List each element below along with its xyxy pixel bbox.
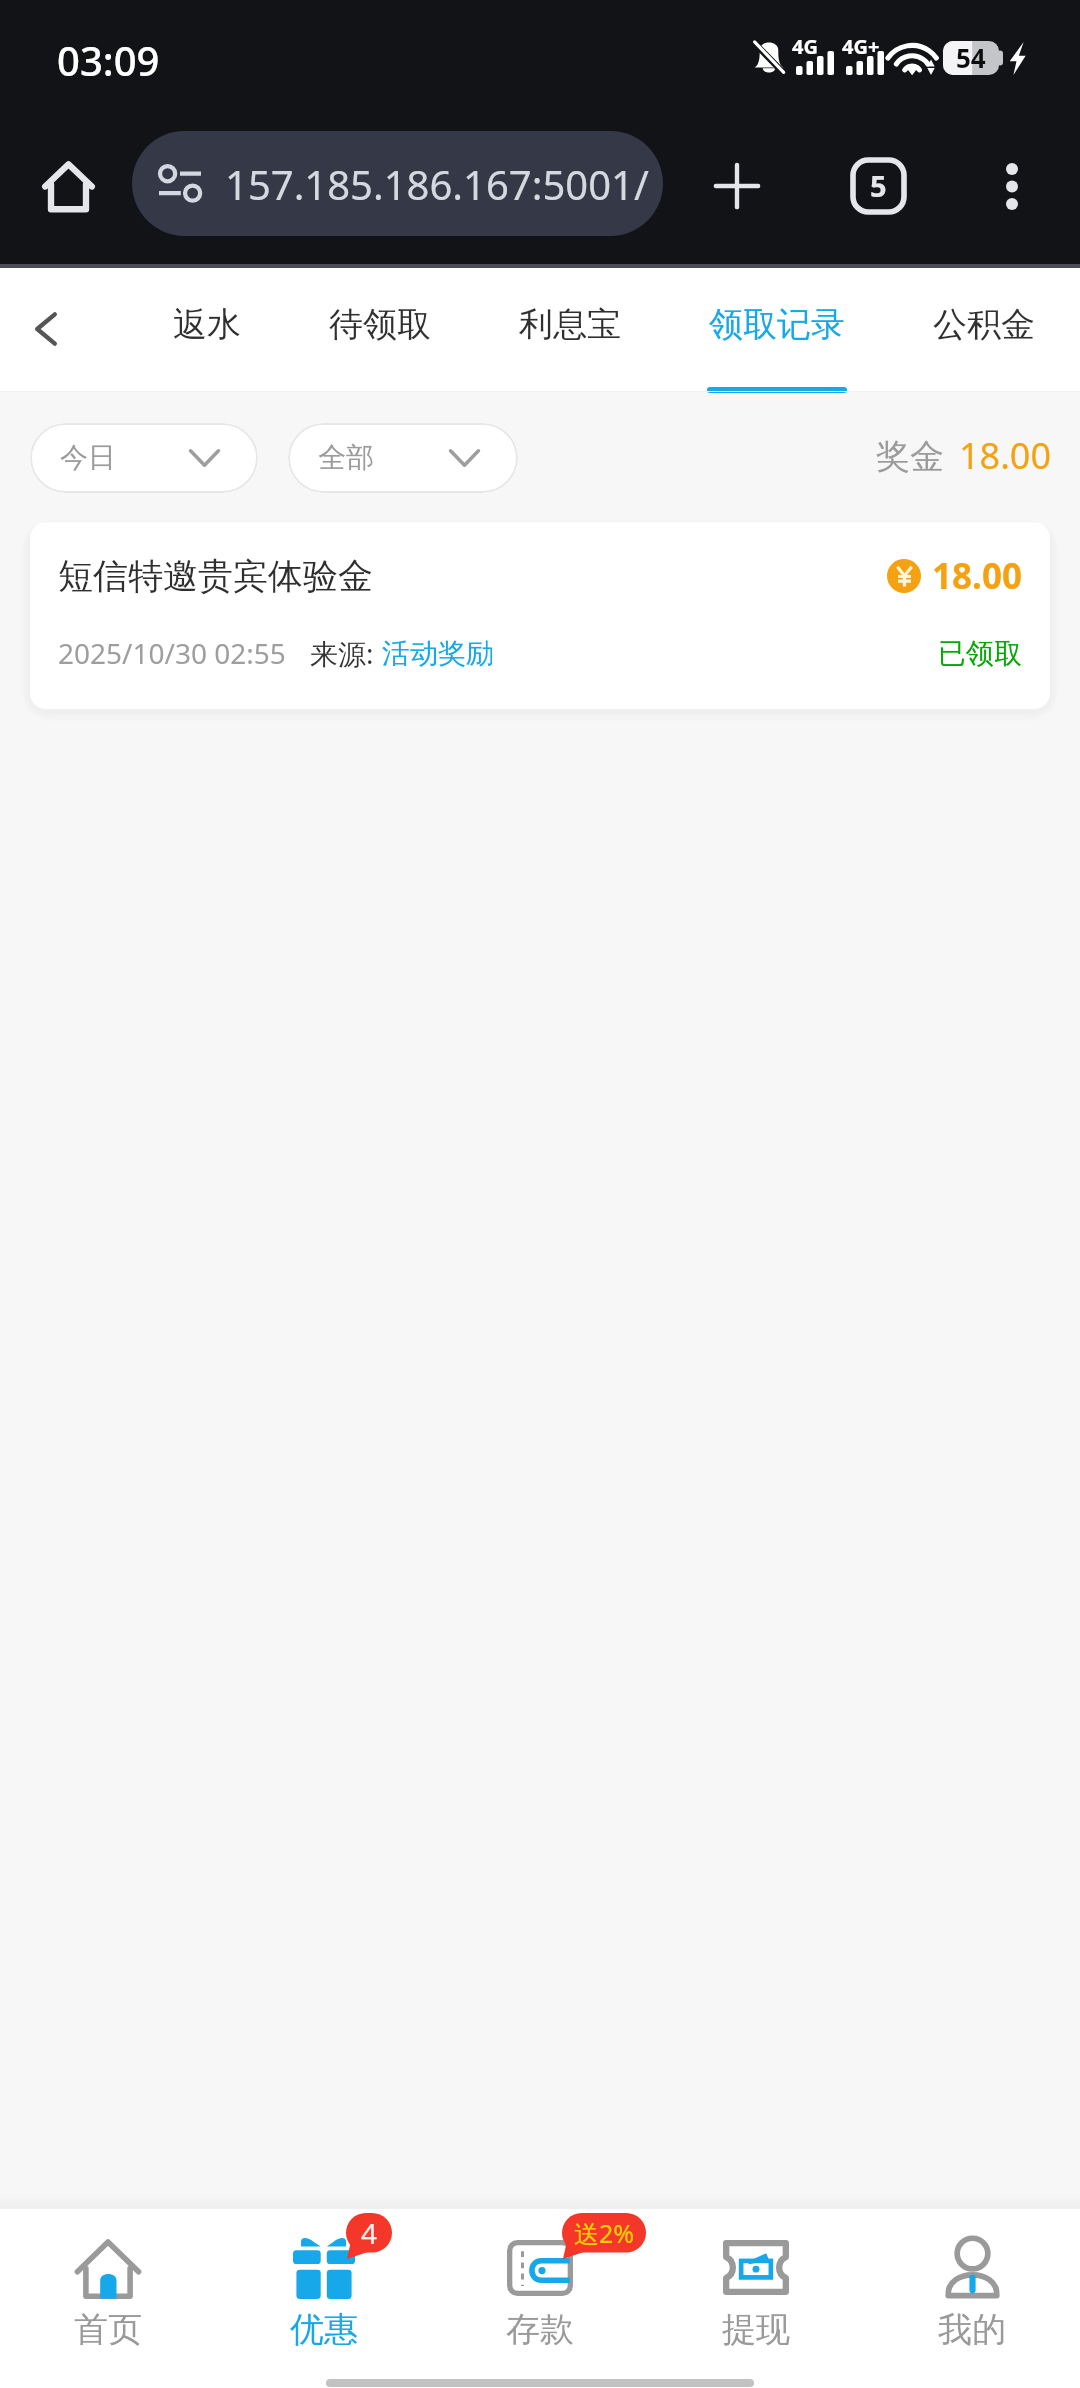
staticText: 18.00 bbox=[932, 552, 1022, 600]
button[interactable]: 优惠 bbox=[216, 2209, 432, 2349]
staticText: 157.185.186.167:5001/ bbox=[225, 157, 649, 211]
button[interactable]: 全部 bbox=[288, 423, 518, 493]
staticText: 提现 bbox=[722, 2308, 790, 2351]
button[interactable]: 157.185.186.167:5001/ bbox=[132, 131, 663, 236]
staticText: 已领取 bbox=[938, 636, 1022, 671]
staticText: 活动奖励 bbox=[382, 636, 494, 671]
button[interactable]: 存款 bbox=[432, 2209, 648, 2349]
staticText: 优惠 bbox=[290, 2308, 358, 2351]
staticText: 全部 bbox=[318, 440, 374, 475]
button[interactable]: Back bbox=[0, 268, 93, 392]
button[interactable]: 领取记录 bbox=[665, 268, 889, 392]
staticText: 领取记录 bbox=[709, 303, 845, 346]
button[interactable]: 利息宝 bbox=[475, 268, 665, 392]
staticText: 公积金 bbox=[933, 303, 1035, 346]
staticText: 存款 bbox=[506, 2308, 574, 2351]
button[interactable]: 短信特邀贵宾体验金 bbox=[30, 522, 1050, 709]
button[interactable]: 待领取 bbox=[285, 268, 475, 392]
staticText: 18.00 bbox=[959, 431, 1052, 480]
staticText: 返水 bbox=[173, 303, 241, 346]
staticText: 2025/10/30 02:55 bbox=[58, 634, 286, 672]
staticText: 送2% bbox=[574, 2216, 635, 2250]
button[interactable]: 返水 bbox=[129, 268, 285, 392]
button[interactable]: 首页 bbox=[0, 2209, 216, 2349]
staticText: 利息宝 bbox=[519, 303, 621, 346]
button[interactable]: New tab bbox=[689, 138, 785, 234]
staticText: 4G bbox=[792, 33, 818, 60]
button[interactable]: 公积金 bbox=[889, 268, 1079, 392]
staticText: 4 bbox=[361, 2214, 378, 2252]
staticText: 4G+ bbox=[842, 33, 880, 60]
button[interactable]: 今日 bbox=[30, 423, 258, 493]
staticText: 54 bbox=[956, 40, 986, 74]
staticText: 奖金 bbox=[876, 435, 944, 478]
button[interactable]: Home bbox=[20, 138, 116, 234]
staticText: 来源: bbox=[310, 634, 374, 672]
staticText: 短信特邀贵宾体验金 bbox=[58, 554, 373, 598]
staticText: 5 bbox=[870, 166, 887, 205]
staticText: 今日 bbox=[60, 440, 116, 475]
staticText: 待领取 bbox=[329, 303, 431, 346]
staticText: 我的 bbox=[938, 2308, 1006, 2351]
button[interactable]: 提现 bbox=[648, 2209, 864, 2349]
button[interactable]: More options bbox=[964, 138, 1060, 234]
staticText: 03:09 bbox=[57, 33, 160, 87]
button[interactable]: Tabs bbox=[830, 138, 926, 234]
button[interactable]: 我的 bbox=[864, 2209, 1080, 2349]
staticText: 首页 bbox=[74, 2308, 142, 2351]
